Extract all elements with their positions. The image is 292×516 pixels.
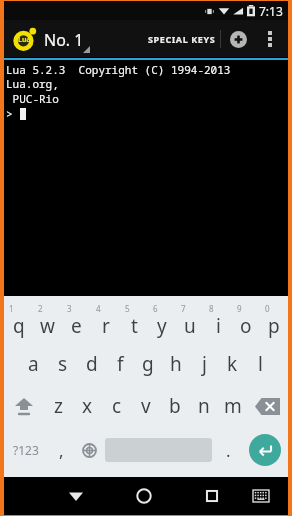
button[interactable]: a bbox=[19, 343, 48, 385]
staticText: c bbox=[112, 393, 122, 419]
button[interactable]: , bbox=[47, 427, 75, 473]
button[interactable]: More options bbox=[255, 24, 285, 54]
staticText: 5 bbox=[125, 303, 130, 314]
staticText: 7:13 bbox=[259, 3, 283, 19]
button[interactable]: Shift bbox=[4, 385, 44, 427]
button[interactable]: 8 bbox=[204, 303, 232, 343]
staticText: w bbox=[40, 313, 55, 339]
staticText: PUC-Rio bbox=[6, 91, 59, 106]
staticText: q bbox=[13, 313, 25, 339]
button[interactable]: Lua 5.2.3 Copyright (C) 1994-2013 Lua.or… bbox=[4, 60, 288, 296]
staticText: SPECIAL KEYS bbox=[148, 33, 216, 45]
button[interactable]: No. 1 bbox=[44, 27, 94, 51]
button[interactable]: d bbox=[77, 343, 106, 385]
button[interactable]: 5 bbox=[120, 303, 148, 343]
button[interactable]: Enter bbox=[242, 427, 288, 473]
button[interactable]: l bbox=[246, 343, 274, 385]
staticText: j bbox=[202, 351, 207, 377]
staticText: o bbox=[240, 313, 252, 339]
staticText: r bbox=[102, 313, 110, 339]
staticText: g bbox=[142, 351, 154, 377]
staticText: h bbox=[170, 351, 182, 377]
staticText: , bbox=[59, 439, 64, 462]
button[interactable]: v bbox=[131, 385, 160, 427]
staticText: e bbox=[71, 313, 82, 339]
staticText: Lua 5.2.3 Copyright (C) 1994-2013 Lua.or… bbox=[6, 62, 288, 91]
button[interactable]: k bbox=[218, 343, 246, 385]
button[interactable]: Add bbox=[221, 22, 255, 56]
staticText: 3 bbox=[67, 303, 72, 314]
button[interactable]: b bbox=[160, 385, 189, 427]
staticText: p bbox=[268, 313, 280, 339]
staticText: 2 bbox=[38, 303, 43, 314]
staticText: 8 bbox=[209, 303, 214, 314]
button[interactable]: j bbox=[190, 343, 218, 385]
staticText: > bbox=[6, 106, 20, 121]
button[interactable]: 2 bbox=[33, 303, 62, 343]
staticText: t bbox=[131, 313, 138, 339]
button[interactable]: . bbox=[214, 427, 242, 473]
staticText: y bbox=[157, 313, 167, 339]
staticText: 7 bbox=[181, 303, 186, 314]
button[interactable]: n bbox=[189, 385, 218, 427]
staticText: i bbox=[216, 313, 221, 339]
staticText: 4 bbox=[96, 303, 101, 314]
button[interactable]: x bbox=[73, 385, 102, 427]
button[interactable]: ?123 bbox=[4, 427, 47, 473]
button[interactable]: SPECIAL KEYS bbox=[144, 25, 220, 53]
staticText: u bbox=[184, 313, 196, 339]
staticText: z bbox=[54, 393, 63, 419]
button[interactable]: 3 bbox=[62, 303, 91, 343]
button[interactable]: m bbox=[218, 385, 247, 427]
button[interactable]: s bbox=[48, 343, 77, 385]
staticText: d bbox=[86, 351, 98, 377]
button[interactable]: 0 bbox=[260, 303, 288, 343]
staticText: s bbox=[58, 351, 68, 377]
staticText: k bbox=[227, 351, 238, 377]
button[interactable]: f bbox=[106, 343, 134, 385]
button[interactable]: c bbox=[102, 385, 131, 427]
button[interactable]: g bbox=[134, 343, 162, 385]
button[interactable]: Back bbox=[58, 477, 94, 515]
staticText: 0 bbox=[265, 303, 270, 314]
staticText: b bbox=[169, 393, 181, 419]
staticText: x bbox=[82, 393, 93, 419]
button[interactable]: 4 bbox=[91, 303, 120, 343]
button[interactable]: h bbox=[162, 343, 190, 385]
staticText: m bbox=[224, 393, 242, 419]
button[interactable]: 7 bbox=[176, 303, 204, 343]
staticText: n bbox=[198, 393, 210, 419]
button[interactable]: Home bbox=[126, 477, 162, 515]
staticText: f bbox=[117, 351, 124, 377]
staticText: 9 bbox=[237, 303, 242, 314]
staticText: ?123 bbox=[13, 442, 39, 458]
button[interactable]: z bbox=[44, 385, 73, 427]
staticText: l bbox=[258, 351, 263, 377]
button[interactable]: Backspace bbox=[247, 385, 288, 427]
button[interactable]: 9 bbox=[232, 303, 260, 343]
button[interactable]: Change language bbox=[75, 427, 103, 473]
button[interactable]: Lua app icon bbox=[12, 26, 38, 52]
staticText: 1 bbox=[9, 303, 14, 314]
staticText: No. 1 bbox=[44, 29, 84, 51]
button[interactable]: Recent apps bbox=[194, 477, 230, 515]
button[interactable]: 1 bbox=[4, 303, 33, 343]
staticText: . bbox=[226, 439, 231, 462]
staticText: a bbox=[28, 351, 39, 377]
button[interactable]: 6 bbox=[148, 303, 176, 343]
button[interactable]: Switch keyboard bbox=[243, 477, 279, 515]
staticText: Lua bbox=[18, 35, 31, 45]
staticText: 6 bbox=[153, 303, 158, 314]
staticText: v bbox=[141, 393, 151, 419]
